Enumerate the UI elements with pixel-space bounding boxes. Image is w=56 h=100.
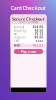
staticText: $65.62	[32, 44, 43, 47]
staticText: Order summary	[19, 20, 38, 24]
staticText: Secure Checkout	[12, 16, 45, 21]
staticText: Total	[13, 44, 20, 47]
staticText: Shipping	[13, 29, 26, 32]
staticText: Tax	[13, 32, 16, 36]
staticText: -$8.00	[33, 36, 43, 39]
staticText: Pay now	[21, 49, 36, 54]
staticText: $64.00	[32, 25, 43, 29]
staticText: $5.12	[34, 32, 43, 36]
staticText: Subtotal	[13, 25, 24, 29]
staticText: 4242	[35, 39, 43, 42]
staticText: Discount	[13, 36, 25, 39]
staticText: Card Checkout	[10, 4, 45, 12]
staticText: $4.50	[34, 29, 43, 32]
button[interactable]: Pay now	[14, 49, 43, 54]
staticText: Card	[13, 39, 19, 42]
